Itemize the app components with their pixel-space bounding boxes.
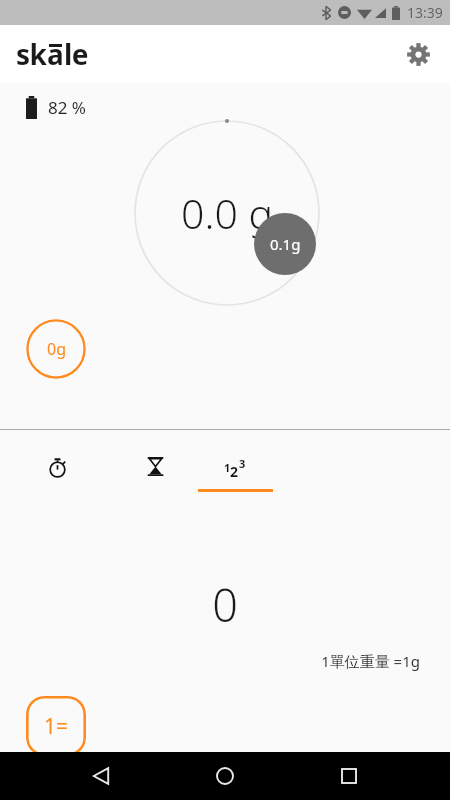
button[interactable]: Timer [115, 430, 195, 512]
staticText: 13:39 [407, 3, 443, 22]
staticText: le [64, 35, 89, 73]
staticText: 1單位重量 =1g [0, 651, 420, 671]
staticText: 0.1g [270, 234, 301, 254]
staticText: 3 [239, 456, 246, 471]
button[interactable]: Settings [397, 33, 439, 75]
button[interactable]: Back [80, 755, 122, 797]
button[interactable]: Home [204, 755, 246, 797]
staticText: 2 [230, 462, 239, 481]
button[interactable]: Recent apps [328, 755, 370, 797]
button[interactable]: skale [16, 35, 89, 73]
button[interactable]: 0.1g [254, 213, 316, 275]
button[interactable]: Counter [195, 430, 275, 512]
staticText: a [47, 35, 64, 73]
button[interactable]: 0g [26, 319, 86, 379]
staticText: sk [16, 35, 47, 73]
staticText: 0 [0, 574, 450, 635]
button[interactable]: Stopwatch [0, 430, 115, 512]
staticText: 1 [224, 460, 231, 475]
button[interactable]: Weight 0.0 g [134, 120, 320, 306]
button[interactable]: 1= [26, 696, 86, 756]
staticText: 82 % [48, 96, 86, 119]
staticText: 0g [47, 338, 66, 360]
staticText: 0.0 g [181, 185, 274, 241]
staticText: 1= [44, 712, 69, 741]
